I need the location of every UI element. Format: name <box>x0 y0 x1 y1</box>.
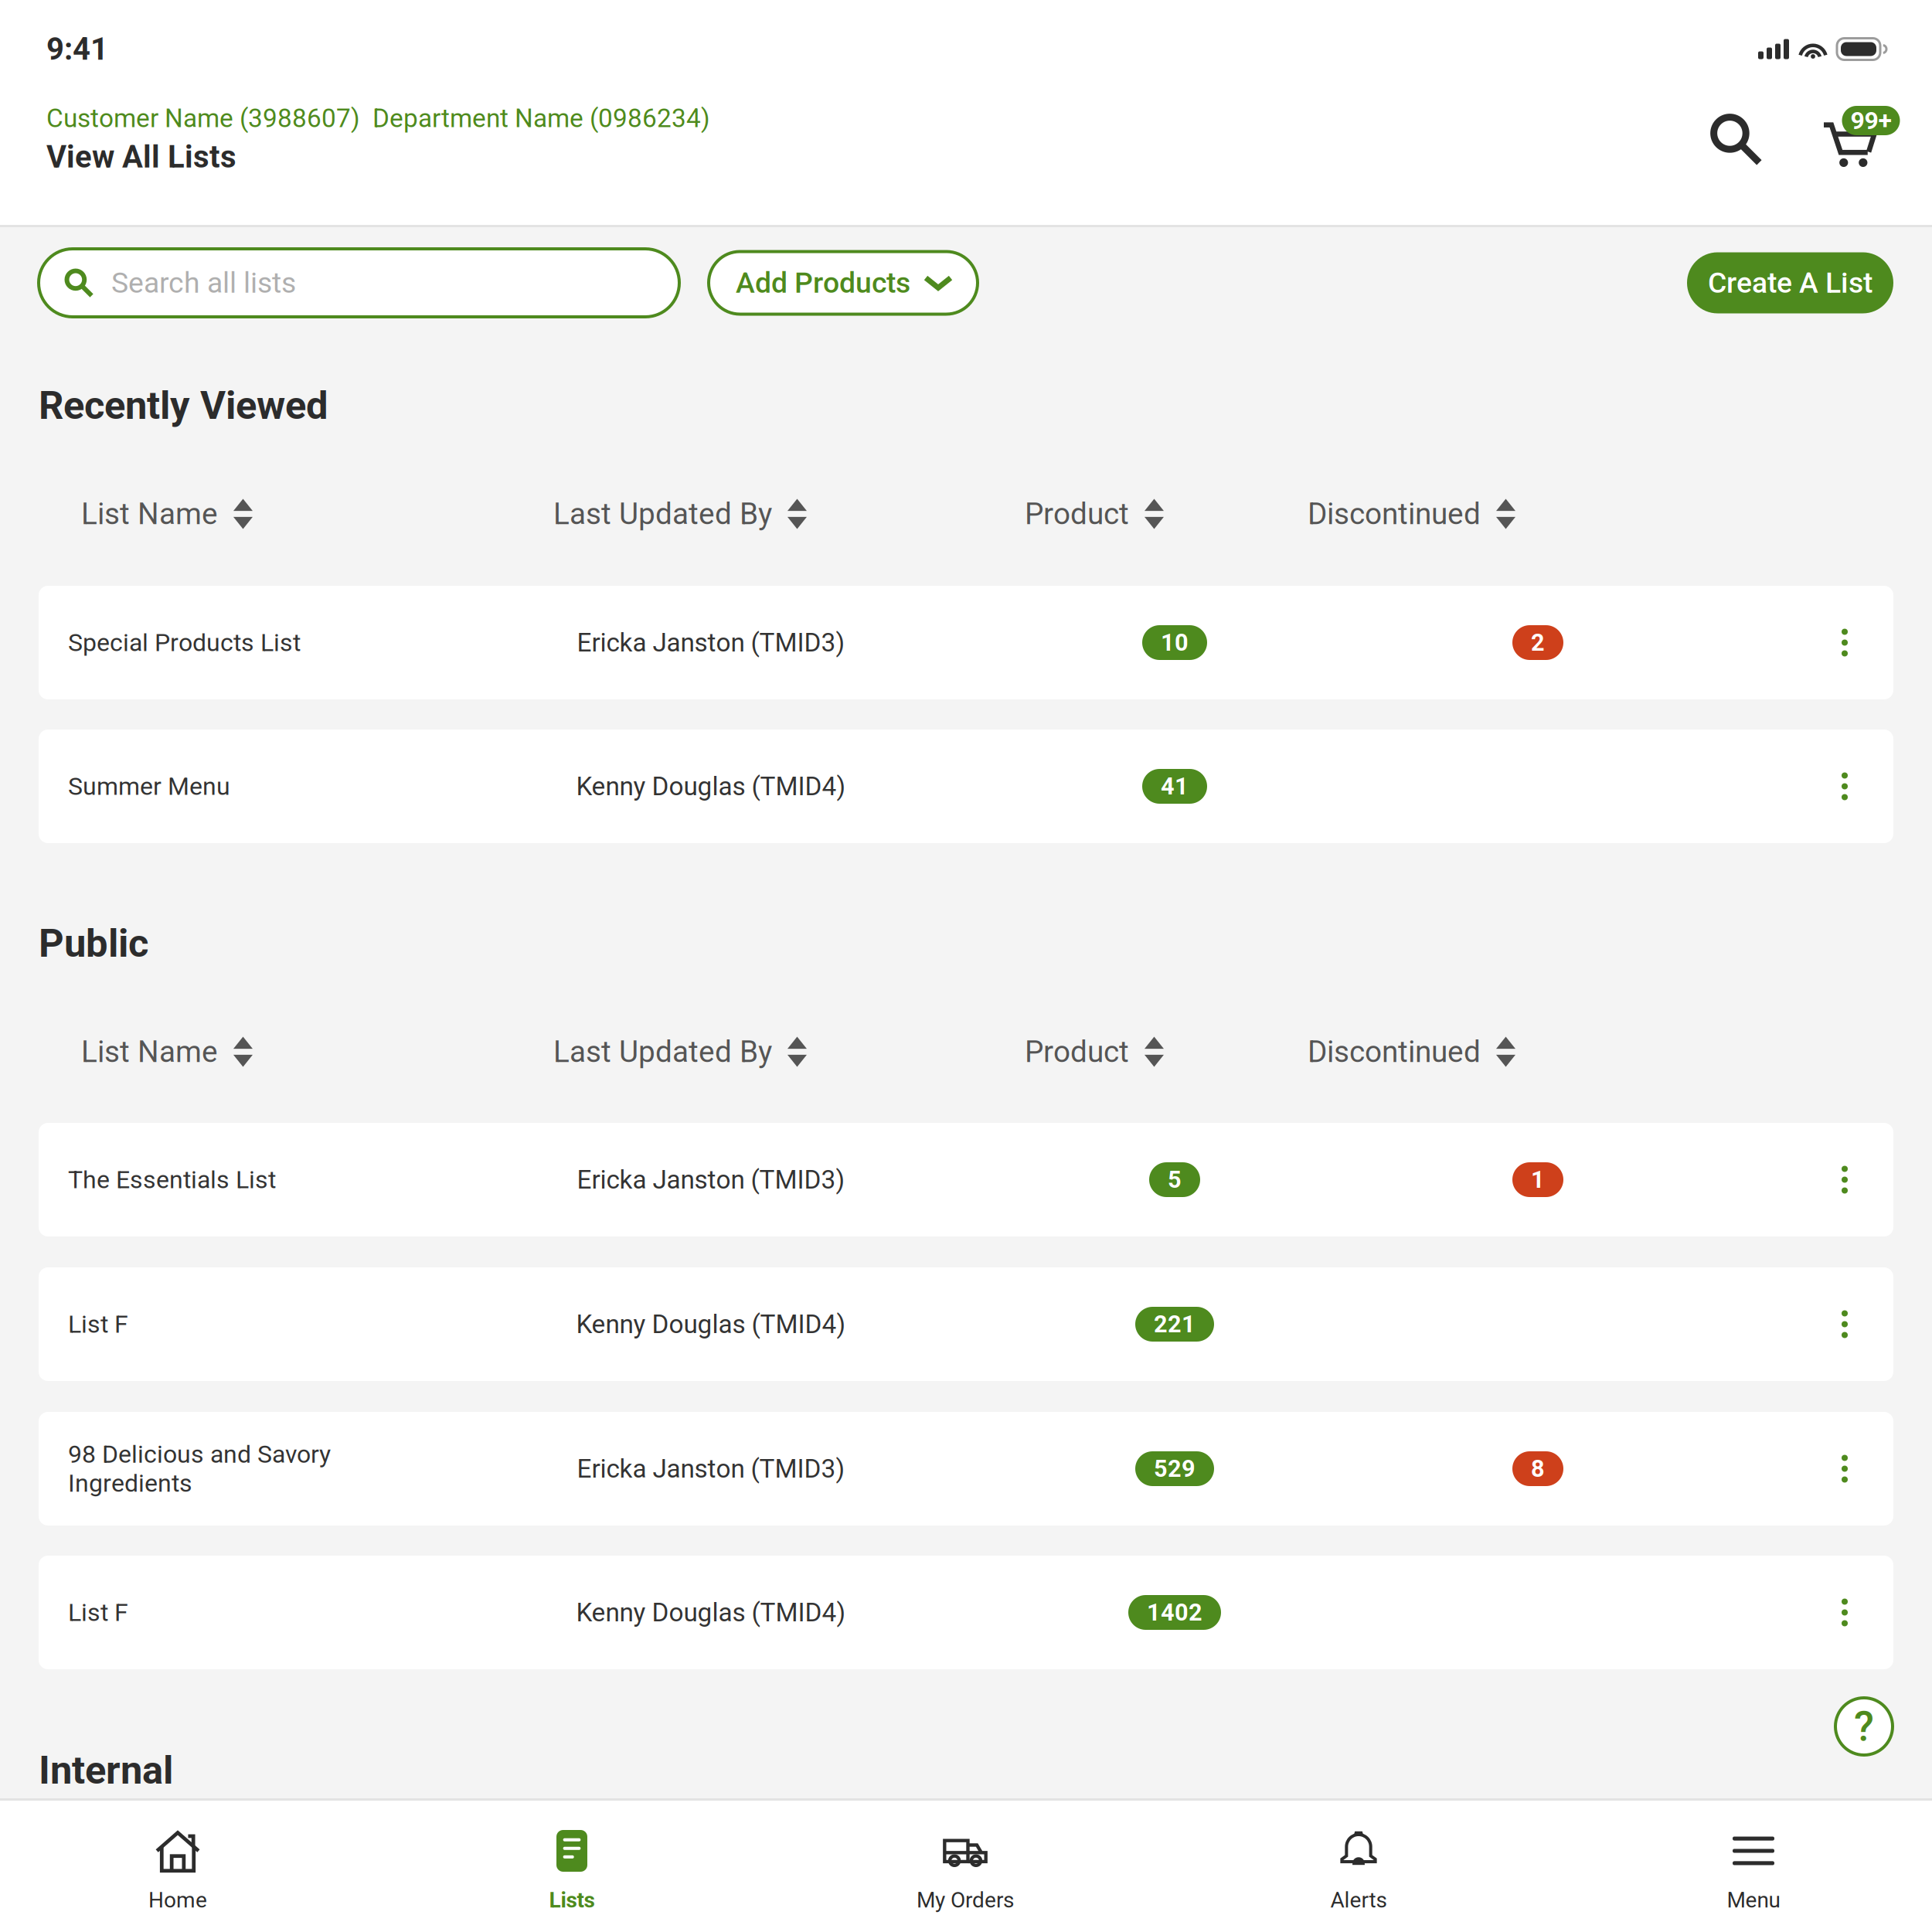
staticText: ? <box>1854 1702 1874 1751</box>
staticText: Lists <box>549 1887 595 1913</box>
button[interactable]: 98 Delicious and Savory Ingredients <box>39 1412 1893 1526</box>
staticText: Ericka Janston (TMID3) <box>577 1454 845 1484</box>
button[interactable]: Last Updated By <box>553 489 1025 539</box>
staticText: 5 <box>1168 1166 1182 1194</box>
button[interactable]: Last Updated By <box>553 1027 1025 1077</box>
staticText: 1402 <box>1147 1599 1202 1626</box>
staticText: Home <box>148 1887 207 1913</box>
button[interactable]: Lists <box>355 1801 788 1932</box>
staticText: List F <box>68 1598 128 1627</box>
staticText: 221 <box>1154 1310 1196 1338</box>
button[interactable]: Cart, 99 plus items <box>1795 100 1903 178</box>
staticText: List Name <box>81 496 218 531</box>
button[interactable]: My Orders <box>788 1801 1142 1932</box>
button[interactable]: List F <box>39 1267 1893 1381</box>
button[interactable]: Search <box>1697 100 1786 178</box>
staticText: Discontinued <box>1308 1034 1481 1069</box>
button[interactable]: Create A List <box>1687 252 1893 313</box>
staticText: Discontinued <box>1308 496 1481 531</box>
staticText: Product <box>1025 1034 1129 1069</box>
staticText: Kenny Douglas (TMID4) <box>576 1309 846 1339</box>
staticText: The Essentials List <box>68 1165 276 1194</box>
staticText: Product <box>1025 496 1129 531</box>
staticText: 99+ <box>1850 106 1891 135</box>
staticText: List F <box>68 1310 128 1339</box>
staticText: Alerts <box>1330 1887 1387 1913</box>
button[interactable]: Home <box>0 1801 355 1932</box>
staticText: Customer Name (3988607) Department Name … <box>46 103 710 133</box>
button[interactable]: Help <box>1835 1698 1893 1755</box>
staticText: Internal <box>39 1747 173 1793</box>
button[interactable]: Menu <box>1575 1801 1932 1932</box>
staticText: List Name <box>81 1034 218 1069</box>
staticText: Ericka Janston (TMID3) <box>577 1165 845 1195</box>
staticText: 10 <box>1161 629 1189 656</box>
staticText: Last Updated By <box>553 496 772 531</box>
staticText: 529 <box>1154 1455 1196 1483</box>
staticText: Menu <box>1727 1887 1780 1913</box>
staticText: Kenny Douglas (TMID4) <box>576 1597 846 1628</box>
button[interactable]: Discontinued <box>1308 489 1617 539</box>
button[interactable]: Special Products List <box>39 586 1893 699</box>
button[interactable]: List Name <box>81 1027 553 1077</box>
button[interactable]: Alerts <box>1142 1801 1575 1932</box>
staticText: My Orders <box>917 1887 1014 1913</box>
staticText: 2 <box>1531 629 1545 656</box>
button[interactable]: Discontinued <box>1308 1027 1617 1077</box>
staticText: 98 Delicious and Savory Ingredients <box>68 1440 331 1498</box>
button[interactable]: List F <box>39 1556 1893 1669</box>
staticText: Create A List <box>1708 266 1872 300</box>
button[interactable]: Add Products <box>709 252 978 314</box>
staticText: Summer Menu <box>68 772 230 801</box>
button[interactable]: Summer Menu <box>39 730 1893 843</box>
staticText: Ericka Janston (TMID3) <box>577 628 845 658</box>
staticText: Add Products <box>736 266 910 300</box>
staticText: Kenny Douglas (TMID4) <box>576 771 846 801</box>
staticText: 9:41 <box>46 31 108 67</box>
staticText: Search all lists <box>111 266 296 300</box>
button[interactable]: Product <box>1025 1027 1308 1077</box>
staticText: 1 <box>1531 1166 1545 1194</box>
button[interactable]: Search all lists <box>39 249 679 317</box>
staticText: Special Products List <box>68 628 301 657</box>
staticText: Public <box>39 920 148 966</box>
staticText: Last Updated By <box>553 1034 772 1069</box>
button[interactable]: Product <box>1025 489 1308 539</box>
staticText: 8 <box>1531 1455 1545 1483</box>
staticText: 41 <box>1161 772 1189 800</box>
staticText: View All Lists <box>46 139 236 175</box>
button[interactable]: The Essentials List <box>39 1123 1893 1236</box>
staticText: Recently Viewed <box>39 383 328 428</box>
button[interactable]: List Name <box>81 489 553 539</box>
